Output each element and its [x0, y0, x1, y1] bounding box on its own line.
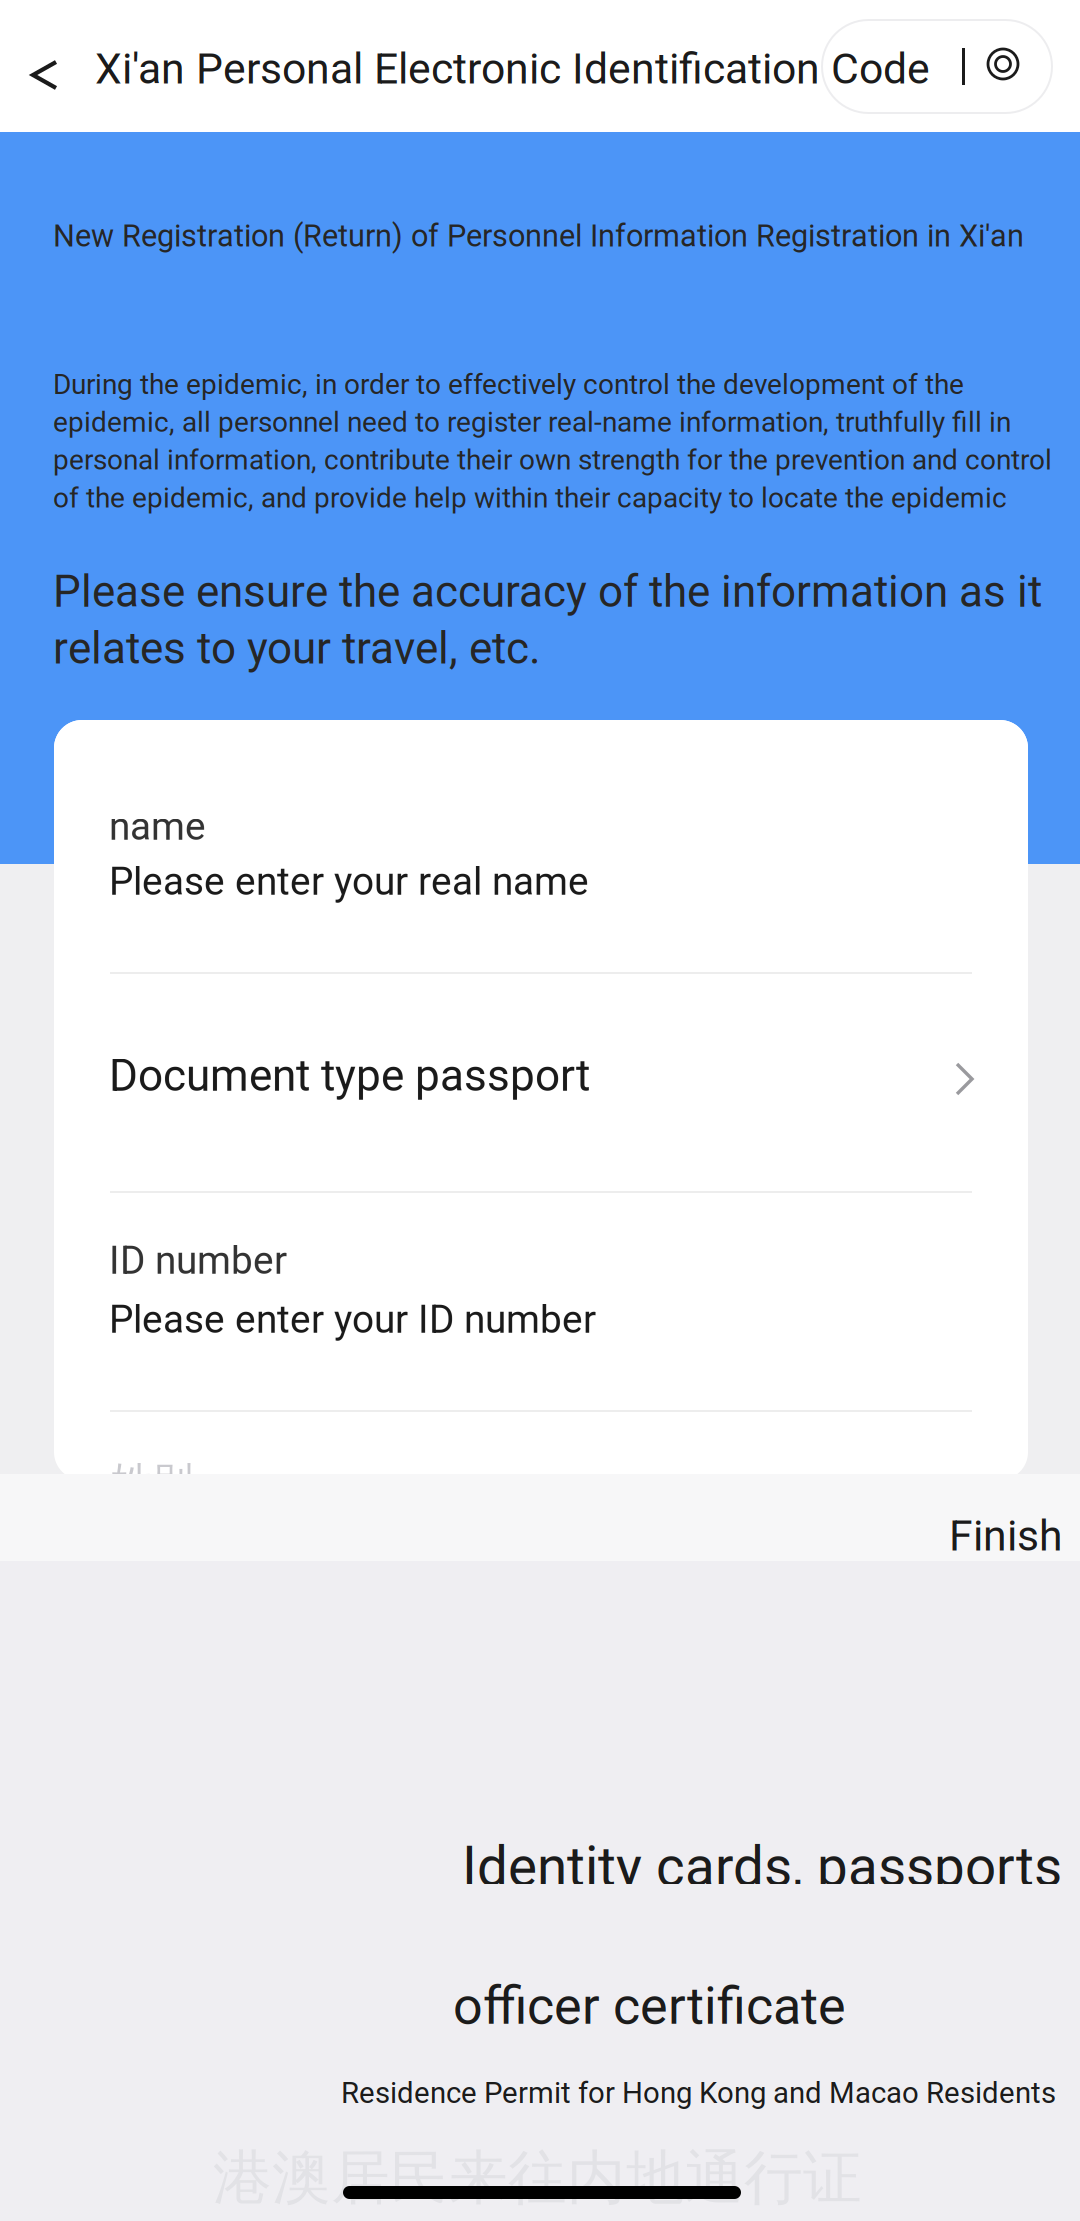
- button[interactable]: name: [54, 720, 1028, 974]
- staticText: Residence Permit for Hong Kong and Macao…: [341, 2076, 1056, 2110]
- button[interactable]: officer certificate: [0, 1980, 1080, 2140]
- button[interactable]: Back: [30, 60, 59, 90]
- staticText: Identity cards, passports: [462, 1835, 1062, 1899]
- staticText: Please enter your ID number: [109, 1297, 596, 1342]
- button[interactable]: Document type passport: [54, 974, 1028, 1191]
- staticText: During the epidemic, in order to effecti…: [53, 368, 1052, 514]
- staticText: Xi'an Personal Electronic Identification…: [95, 44, 930, 94]
- button[interactable]: ID number: [54, 1193, 1028, 1412]
- staticText: Please ensure the accuracy of the inform…: [53, 566, 1042, 674]
- button[interactable]: Finish: [949, 1493, 1080, 1561]
- staticText: officer certificate: [453, 1975, 846, 2036]
- staticText: Please enter your real name: [109, 859, 589, 904]
- button[interactable]: Identity cards, passports: [0, 1800, 1080, 1884]
- staticText: 姓别: [111, 1456, 193, 1508]
- staticText: Finish: [949, 1511, 1063, 1561]
- button[interactable]: Menu: [987, 48, 1019, 80]
- staticText: ID number: [109, 1238, 287, 1283]
- staticText: officer certificate: [453, 1975, 846, 2036]
- staticText: name: [109, 804, 206, 849]
- staticText: Document type passport: [109, 1050, 590, 1102]
- staticText: 港澳居民来往内地通行证: [213, 2141, 862, 2215]
- staticText: New Registration (Return) of Personnel I…: [53, 218, 1024, 254]
